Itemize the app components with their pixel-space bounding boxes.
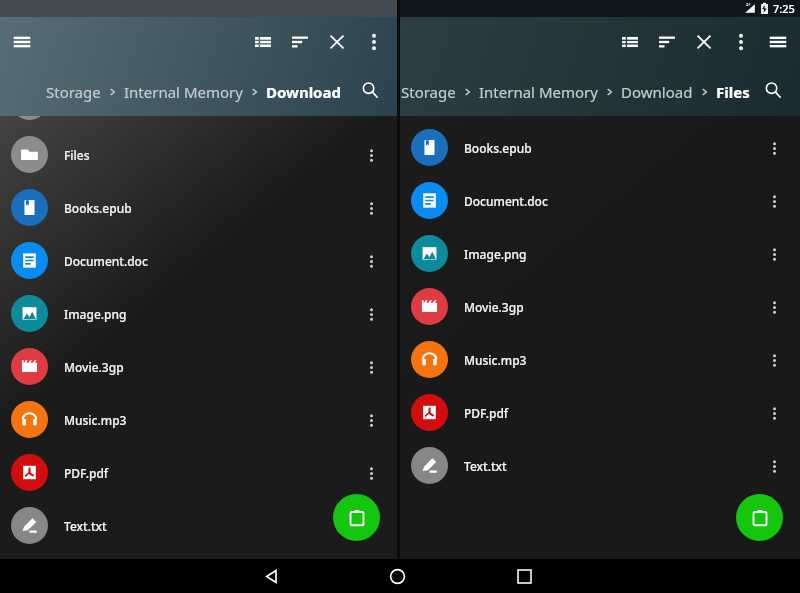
button[interactable]: Music.mp3 xyxy=(400,333,800,386)
button[interactable]: More options for xyxy=(0,75,397,128)
staticText: PDF.pdf xyxy=(64,465,109,481)
button[interactable]: More options for Document.doc xyxy=(352,242,390,280)
button[interactable]: More options for Image.png xyxy=(352,295,390,333)
staticText: Text.txt xyxy=(64,518,107,534)
staticText: Movie.3gp xyxy=(464,299,524,315)
button[interactable]: Movie.3gp xyxy=(400,280,800,333)
staticText: Image.png xyxy=(64,306,127,322)
button[interactable]: Image.png xyxy=(0,287,397,340)
button[interactable]: Download xyxy=(266,82,341,102)
button[interactable]: More options for xyxy=(352,83,390,121)
button[interactable]: View mode xyxy=(611,23,648,60)
button[interactable]: Text.txt xyxy=(400,439,800,492)
button[interactable]: Menu xyxy=(3,23,40,60)
button[interactable]: Sort xyxy=(281,23,318,60)
button[interactable]: More options for Books.epub xyxy=(755,129,793,167)
button[interactable]: Files xyxy=(0,128,397,181)
button[interactable]: Download xyxy=(621,82,693,102)
button[interactable]: More options for Text.txt xyxy=(755,447,793,485)
staticText: Image.png xyxy=(464,246,527,262)
button[interactable]: Text.txt xyxy=(0,499,397,552)
button[interactable]: Document.doc xyxy=(0,234,397,287)
button[interactable]: More options for Books.epub xyxy=(352,189,390,227)
button[interactable]: Document.doc xyxy=(400,174,800,227)
button[interactable]: Internal Memory xyxy=(479,82,598,102)
button[interactable]: Storage xyxy=(401,82,456,102)
staticText: Books.epub xyxy=(464,140,532,156)
button[interactable]: Menu xyxy=(759,23,796,60)
staticText: PDF.pdf xyxy=(464,405,509,421)
button[interactable]: Music.mp3 xyxy=(0,393,397,446)
button[interactable]: Books.epub xyxy=(400,121,800,174)
staticText: Document.doc xyxy=(464,193,548,209)
button[interactable]: More options for Music.mp3 xyxy=(755,341,793,379)
button[interactable]: Movie.3gp xyxy=(0,340,397,393)
button[interactable]: Search xyxy=(754,71,791,108)
button[interactable]: Paste xyxy=(736,494,783,541)
button[interactable]: Search xyxy=(351,71,388,108)
button[interactable]: Home xyxy=(378,559,416,593)
button[interactable]: More options for Image.png xyxy=(755,235,793,273)
button[interactable]: More options for PDF.pdf xyxy=(755,394,793,432)
button[interactable]: View mode xyxy=(244,23,281,60)
button[interactable]: Back xyxy=(252,559,290,593)
button[interactable]: PDF.pdf xyxy=(400,386,800,439)
button[interactable]: More options xyxy=(722,23,759,60)
staticText: Document.doc xyxy=(64,253,148,269)
button[interactable]: More options for Movie.3gp xyxy=(352,348,390,386)
staticText: Music.mp3 xyxy=(464,352,527,368)
staticText: Books.epub xyxy=(64,200,132,216)
button[interactable]: More options for Document.doc xyxy=(755,182,793,220)
button[interactable]: More options for Text.txt xyxy=(352,507,390,545)
staticText: Movie.3gp xyxy=(64,359,124,375)
button[interactable]: Paste xyxy=(333,494,380,541)
button[interactable]: Internal Memory xyxy=(124,82,243,102)
staticText: 7:25 xyxy=(773,1,795,16)
button[interactable]: More options for Movie.3gp xyxy=(755,288,793,326)
button[interactable]: More options for PDF.pdf xyxy=(352,454,390,492)
button[interactable]: More options for Files xyxy=(352,136,390,174)
button[interactable]: Storage xyxy=(46,82,101,102)
button[interactable]: Files xyxy=(716,82,750,102)
staticText: Files xyxy=(64,147,90,163)
button[interactable]: PDF.pdf xyxy=(0,446,397,499)
staticText: Text.txt xyxy=(464,458,507,474)
button[interactable]: Recent apps xyxy=(505,559,543,593)
button[interactable]: Close xyxy=(685,23,722,60)
button[interactable]: Sort xyxy=(648,23,685,60)
button[interactable]: Close xyxy=(318,23,355,60)
button[interactable]: More options for Music.mp3 xyxy=(352,401,390,439)
button[interactable]: Books.epub xyxy=(0,181,397,234)
button[interactable]: Image.png xyxy=(400,227,800,280)
button[interactable]: More options xyxy=(355,23,392,60)
staticText: Music.mp3 xyxy=(64,412,127,428)
